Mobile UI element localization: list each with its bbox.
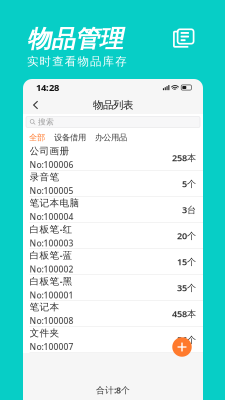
staticText: 458本: [172, 307, 196, 320]
button[interactable]: 办公用品: [93, 132, 129, 143]
staticText: No:100006: [29, 159, 73, 170]
staticText: No:100004: [29, 211, 73, 222]
staticText: 5个: [182, 177, 196, 190]
staticText: 3台: [182, 203, 196, 216]
button[interactable]: 搜索: [23, 114, 203, 130]
button[interactable]: 文件夹: [23, 327, 203, 353]
button[interactable]: 新增: [171, 336, 193, 358]
staticText: 设备借用: [54, 132, 86, 143]
button[interactable]: 笔记本: [23, 301, 203, 327]
staticText: 白板笔-黑: [29, 274, 72, 287]
button[interactable]: 笔记本电脑: [23, 197, 203, 223]
staticText: 笔记本: [29, 301, 59, 313]
button[interactable]: 白板笔-蓝: [23, 249, 203, 275]
button[interactable]: 返回: [28, 97, 44, 113]
staticText: 笔记本电脑: [29, 197, 79, 209]
staticText: 35个: [177, 281, 196, 294]
staticText: 白板笔-红: [29, 222, 72, 235]
staticText: 物品管理: [27, 24, 123, 54]
staticText: 物品列表: [93, 98, 133, 111]
button[interactable]: 白板笔-黑: [23, 275, 203, 301]
button[interactable]: 录音笔: [23, 171, 203, 197]
staticText: 白板笔-蓝: [29, 248, 72, 261]
staticText: 公司画册: [29, 145, 69, 157]
button[interactable]: 白板笔-红: [23, 223, 203, 249]
staticText: No:100002: [29, 263, 73, 275]
staticText: No:100005: [29, 185, 73, 196]
staticText: 录音笔: [29, 171, 59, 183]
staticText: 搜索: [38, 117, 54, 127]
staticText: 20个: [177, 229, 196, 242]
staticText: 14:28: [36, 81, 59, 94]
staticText: 合计:8个: [96, 384, 130, 396]
staticText: 文件夹: [29, 327, 59, 339]
staticText: No:100001: [29, 289, 73, 301]
staticText: 实时查看物品库存: [27, 54, 126, 69]
staticText: No:100007: [29, 341, 73, 352]
button[interactable]: 公司画册: [23, 145, 203, 171]
staticText: 15个: [177, 255, 196, 268]
staticText: 258本: [172, 151, 196, 164]
staticText: 办公用品: [95, 132, 127, 143]
staticText: 全部: [29, 132, 45, 143]
button[interactable]: 设备借用: [52, 132, 88, 143]
staticText: No:100003: [29, 237, 73, 249]
staticText: 56个: [177, 333, 196, 346]
staticText: No:100008: [29, 315, 73, 326]
button[interactable]: 全部: [27, 132, 47, 143]
